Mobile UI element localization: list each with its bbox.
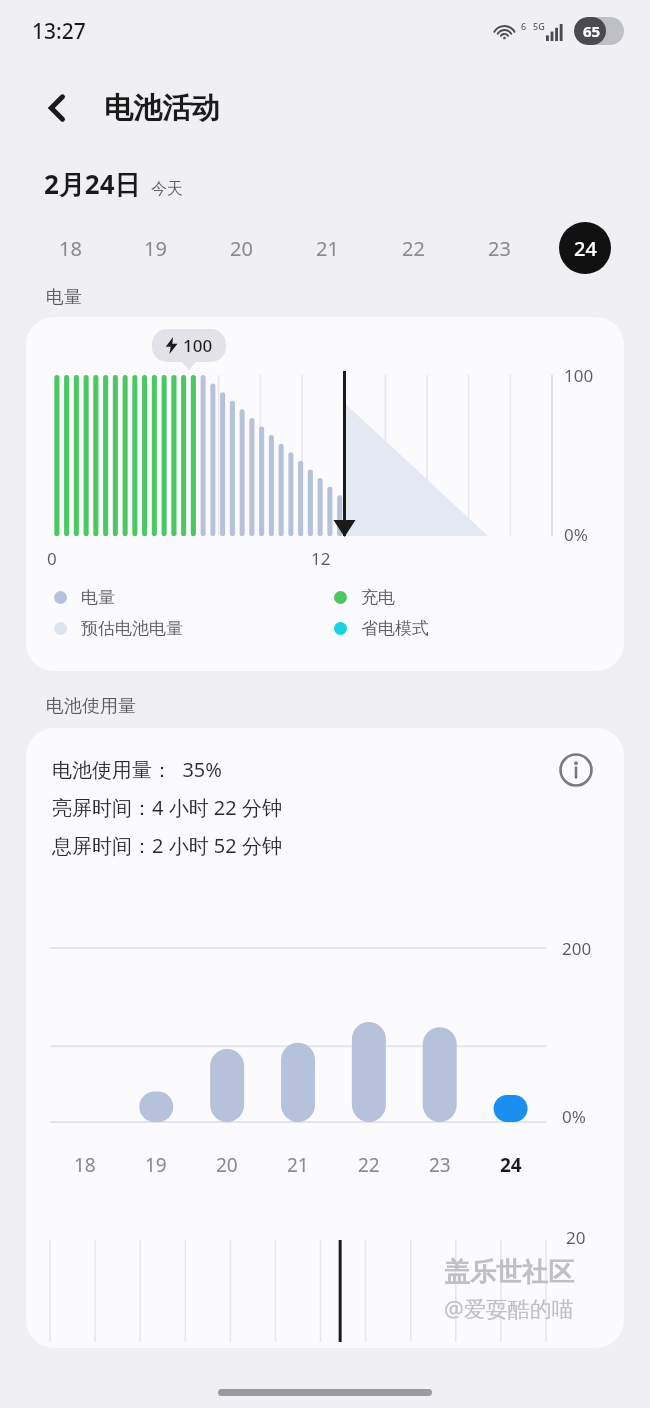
button[interactable]: 20 (198, 220, 284, 276)
staticText: 电池使用量： 35% (52, 756, 222, 783)
staticText: 电量 (46, 286, 82, 309)
button[interactable]: 返回 (34, 84, 82, 132)
staticText: 21 (287, 1152, 309, 1178)
button[interactable]: 21 (284, 220, 370, 276)
staticText: 23 (488, 235, 511, 262)
staticText: 2月24日 (44, 166, 141, 202)
staticText: 12 (311, 547, 331, 570)
staticText: 21 (316, 235, 339, 262)
button[interactable]: 19 (113, 220, 198, 276)
button[interactable]: 信息 (552, 746, 600, 794)
staticText: 0% (562, 1105, 586, 1128)
staticText: 100 (564, 364, 594, 387)
staticText: 盖乐世社区 (444, 1256, 574, 1289)
staticText: 电量 (81, 587, 115, 608)
staticText: 22 (402, 235, 425, 262)
staticText: 0% (564, 523, 588, 546)
staticText: 23 (429, 1152, 451, 1178)
button[interactable]: 18 (28, 220, 113, 276)
staticText: 充电 (361, 587, 395, 608)
button[interactable]: 23 (456, 220, 542, 276)
staticText: 20 (216, 1152, 238, 1178)
staticText: 电池活动 (104, 90, 220, 127)
staticText: 0 (47, 547, 57, 570)
staticText: 200 (562, 937, 592, 960)
staticText: 22 (358, 1152, 380, 1178)
staticText: 电池使用量 (46, 695, 136, 718)
staticText: @爱耍酷的喵 (444, 1293, 574, 1323)
staticText: 24 (500, 1152, 522, 1178)
button[interactable]: 电池使用量： 35% (26, 728, 624, 1348)
staticText: 5G (533, 20, 545, 32)
staticText: 18 (59, 235, 82, 262)
staticText: 省电模式 (361, 618, 429, 639)
staticText: 100 (183, 334, 213, 357)
staticText: 亮屏时间：4 小时 22 分钟 (52, 794, 282, 821)
button[interactable]: 100 (26, 317, 624, 671)
staticText: 13:27 (32, 17, 86, 46)
staticText: 18 (74, 1152, 96, 1178)
staticText: 6 (521, 20, 527, 32)
staticText: 24 (574, 235, 597, 262)
button[interactable]: 24 (542, 220, 628, 276)
staticText: 19 (144, 235, 167, 262)
staticText: 今天 (151, 179, 183, 199)
staticText: 19 (145, 1152, 167, 1178)
staticText: 预估电池电量 (81, 618, 183, 639)
staticText: 息屏时间：2 小时 52 分钟 (52, 832, 282, 859)
staticText: 65 (583, 21, 601, 41)
staticText: 20 (566, 1226, 586, 1249)
staticText: 20 (230, 235, 253, 262)
button[interactable]: 22 (370, 220, 456, 276)
